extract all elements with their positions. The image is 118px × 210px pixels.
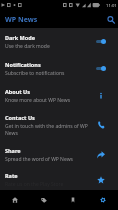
staticText: Notifications <box>5 61 41 68</box>
staticText: Rate <box>5 172 18 179</box>
button[interactable]: Share <box>0 140 118 170</box>
button[interactable]: Rate <box>95 173 113 187</box>
staticText: 11:01 <box>106 3 117 9</box>
staticText: Subscribe to notifications <box>5 70 65 77</box>
staticText: About Us <box>5 88 31 95</box>
button[interactable]: Contact Us <box>95 118 113 132</box>
button[interactable]: Bookmarks <box>58 190 88 210</box>
button[interactable]: Rate <box>0 170 118 190</box>
button[interactable]: Dark Mode <box>0 28 118 55</box>
staticText: Contact Us <box>5 114 35 121</box>
staticText: Know more about WP News <box>5 97 71 104</box>
staticText: Get in touch with the admins of WP News <box>5 123 92 136</box>
button[interactable]: About Us <box>0 82 118 109</box>
button[interactable]: Search <box>104 13 118 27</box>
button[interactable]: Home <box>0 190 29 210</box>
staticText: Spread the word of WP News <box>5 156 73 163</box>
button[interactable]: Notifications <box>0 55 118 82</box>
button[interactable]: Tags <box>29 190 58 210</box>
button[interactable]: Share <box>95 148 113 162</box>
button[interactable]: Toggle <box>95 36 113 48</box>
button[interactable]: Contact Us <box>0 109 118 140</box>
button[interactable]: Settings <box>88 190 118 210</box>
staticText: Share <box>5 147 21 154</box>
staticText: Use the dark mode <box>5 43 50 50</box>
button[interactable]: Toggle <box>95 63 113 75</box>
staticText: Dark Mode <box>5 34 36 41</box>
button[interactable]: About Us <box>95 89 113 103</box>
staticText: WP News <box>5 15 38 25</box>
